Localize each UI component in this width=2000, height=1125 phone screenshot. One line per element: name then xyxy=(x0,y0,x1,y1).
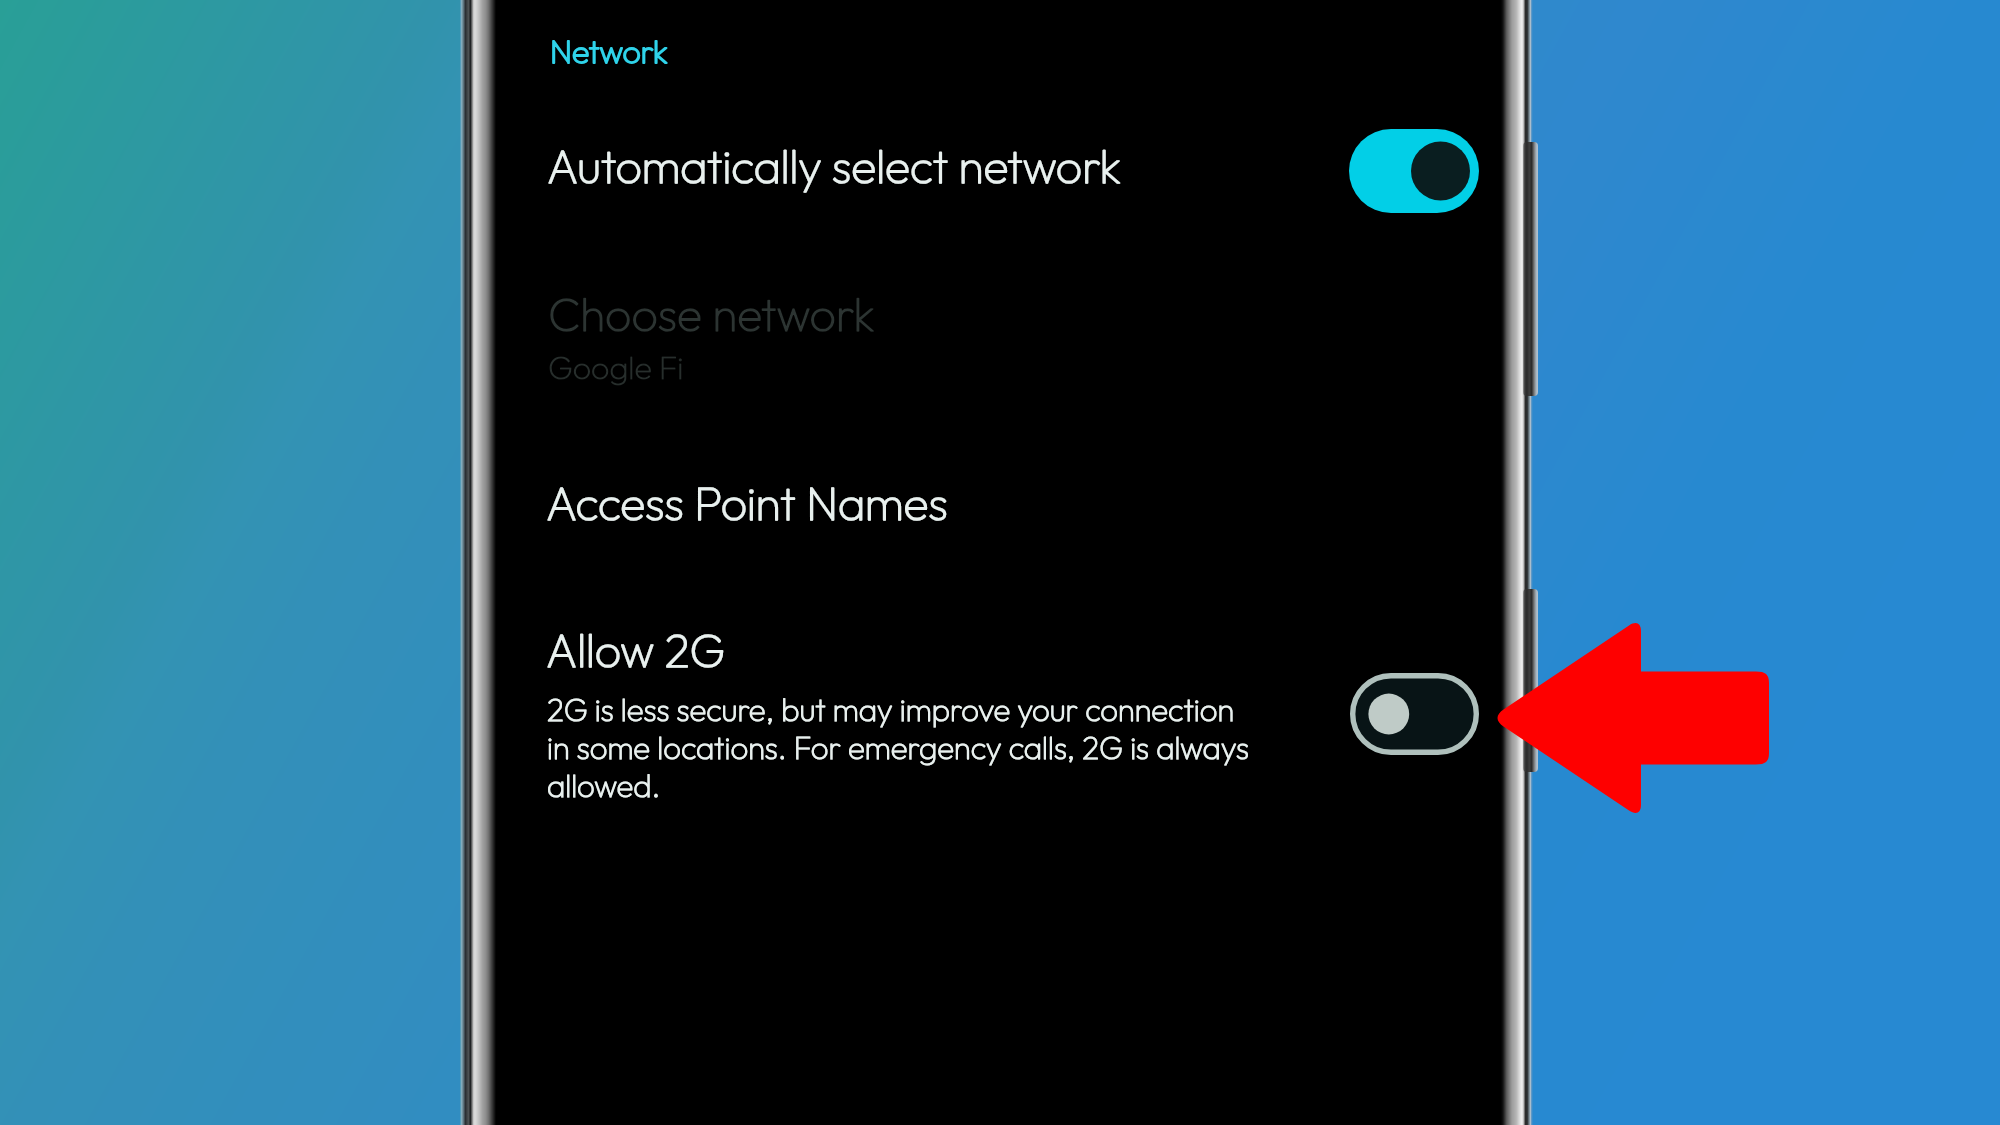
staticText: Automatically select network xyxy=(547,137,1121,195)
button[interactable]: Automatically select network xyxy=(490,96,1503,214)
staticText: Google Fi xyxy=(548,347,684,387)
staticText: Choose network xyxy=(548,285,875,343)
staticText: Google Fi xyxy=(548,347,684,387)
staticText: Network xyxy=(550,31,668,71)
staticText: 2G is less secure, but may improve your … xyxy=(547,690,1253,805)
staticText: Allow 2G xyxy=(546,621,726,679)
staticText: Access Point Names xyxy=(546,474,948,532)
button[interactable]: Access Point Names xyxy=(490,442,1503,560)
button[interactable]: Automatically select network switch, on xyxy=(1349,129,1479,213)
staticText: Access Point Names xyxy=(546,474,948,532)
button[interactable]: Choose network, Google Fi xyxy=(490,252,1503,412)
button[interactable]: Allow 2G switch, off xyxy=(1350,673,1479,755)
staticText: Automatically select network xyxy=(547,137,1121,195)
staticText: Network xyxy=(550,31,668,71)
staticText: Allow 2G xyxy=(546,621,726,679)
staticText: 2G is less secure, but may improve your … xyxy=(547,690,1253,805)
staticText: Choose network xyxy=(548,285,875,343)
button[interactable]: Allow 2G xyxy=(490,592,1503,820)
